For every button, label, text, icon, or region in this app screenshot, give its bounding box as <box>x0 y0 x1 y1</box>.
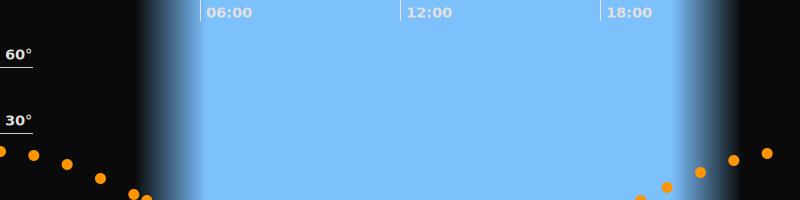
staticText: 60° <box>5 46 32 63</box>
staticText: 12:00 <box>406 4 452 21</box>
staticText: 18:00 <box>606 4 652 21</box>
staticText: 30° <box>5 112 32 129</box>
staticText: 06:00 <box>206 4 252 21</box>
